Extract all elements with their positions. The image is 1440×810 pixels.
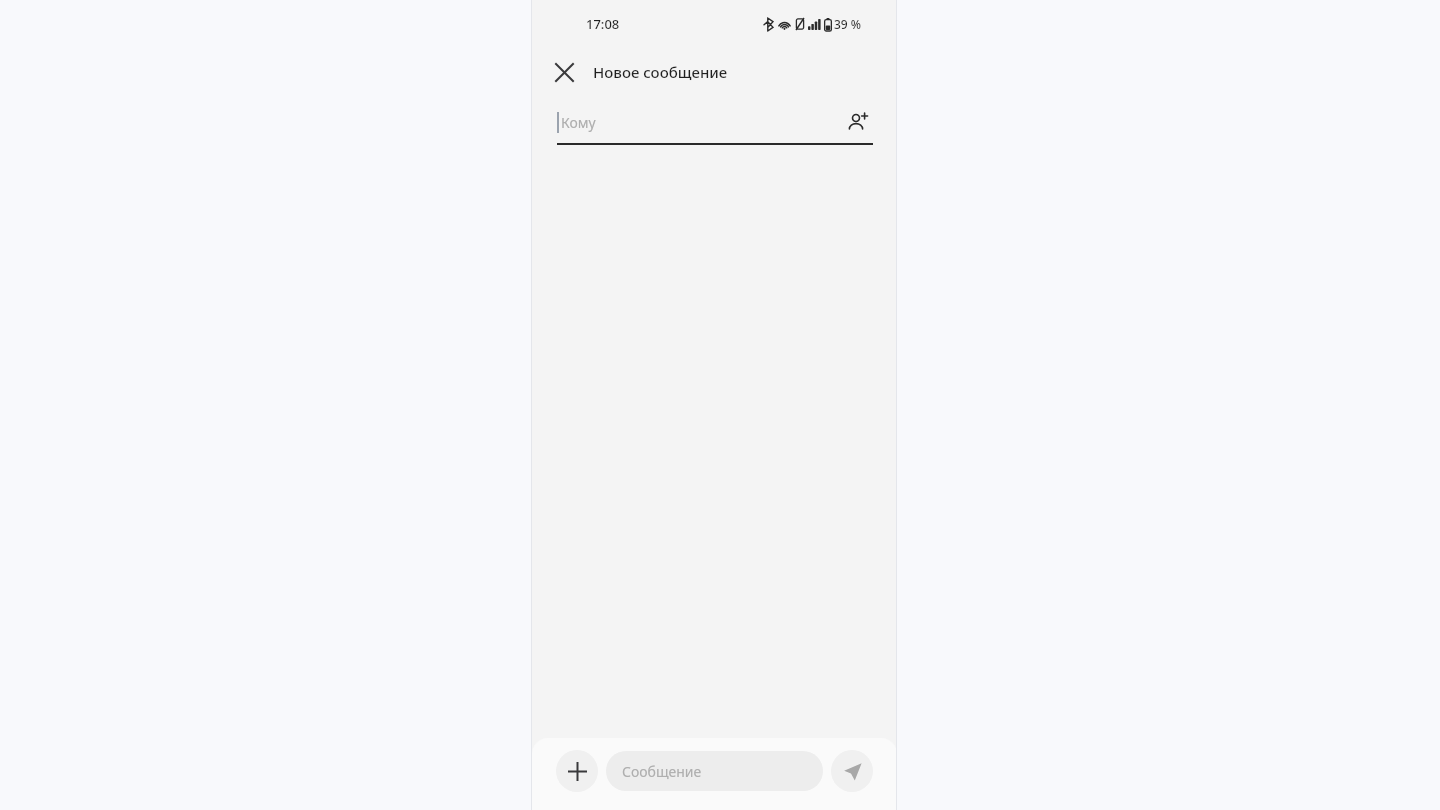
- button[interactable]: Кому: [557, 100, 847, 144]
- staticText: Новое сообщение: [593, 62, 728, 82]
- button[interactable]: Добавить контакт: [837, 101, 879, 143]
- button[interactable]: Вложение: [556, 750, 598, 792]
- button[interactable]: Сообщение: [606, 751, 823, 791]
- staticText: 39 %: [834, 16, 862, 32]
- button[interactable]: Отправить: [831, 750, 873, 792]
- staticText: Сообщение: [622, 762, 702, 781]
- staticText: 17:08: [586, 15, 620, 33]
- staticText: Кому: [561, 113, 596, 132]
- button[interactable]: Закрыть: [544, 52, 584, 92]
